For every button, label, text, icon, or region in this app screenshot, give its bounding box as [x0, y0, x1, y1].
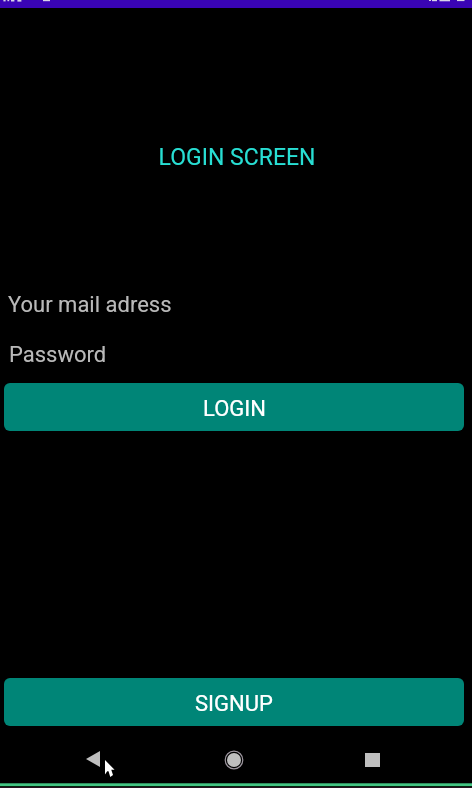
button[interactable]: Password [0, 335, 472, 377]
staticText: Your mail adress [8, 292, 172, 318]
button[interactable]: Back [73, 739, 113, 779]
button[interactable]: LOGIN [4, 383, 464, 431]
staticText: LOGIN [203, 396, 266, 422]
staticText: SIGNUP [195, 691, 273, 717]
button[interactable]: SIGNUP [4, 678, 464, 726]
staticText: Password [9, 342, 107, 368]
staticText: LOGIN SCREEN [1, 144, 472, 171]
button[interactable]: Home [214, 740, 254, 780]
button[interactable]: Recents [352, 740, 392, 780]
button[interactable]: Your mail adress [0, 285, 472, 327]
